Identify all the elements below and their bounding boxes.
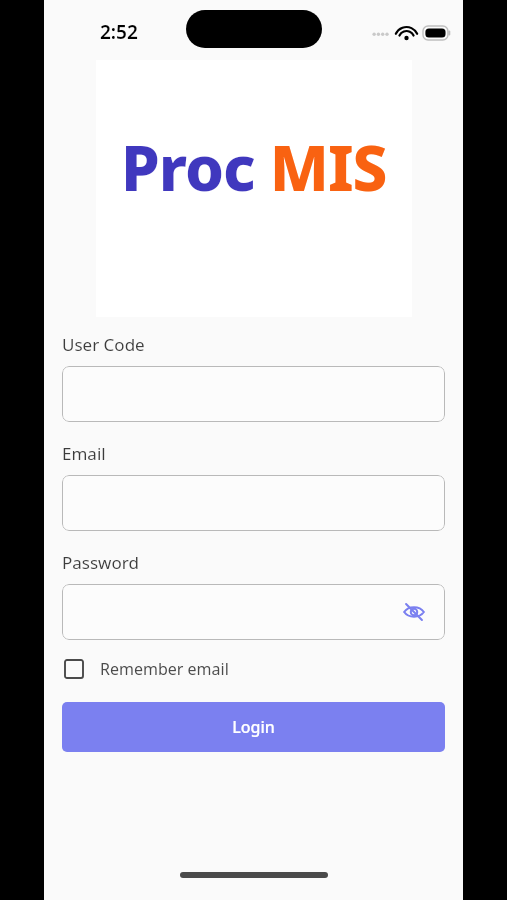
button[interactable]: Show password (399, 597, 429, 627)
staticText: Email (62, 442, 106, 465)
staticText: Proc MIS (121, 125, 387, 209)
button[interactable]: Show password (62, 584, 445, 640)
staticText: Remember email (100, 658, 229, 680)
staticText: User Code (62, 333, 145, 356)
staticText: Login (232, 716, 275, 738)
button[interactable] (62, 366, 445, 422)
button[interactable]: Remember email (62, 654, 231, 684)
staticText: Password (62, 551, 139, 574)
staticText: 2:52 (100, 19, 138, 45)
button[interactable] (62, 475, 445, 531)
button[interactable]: Login (62, 702, 445, 752)
